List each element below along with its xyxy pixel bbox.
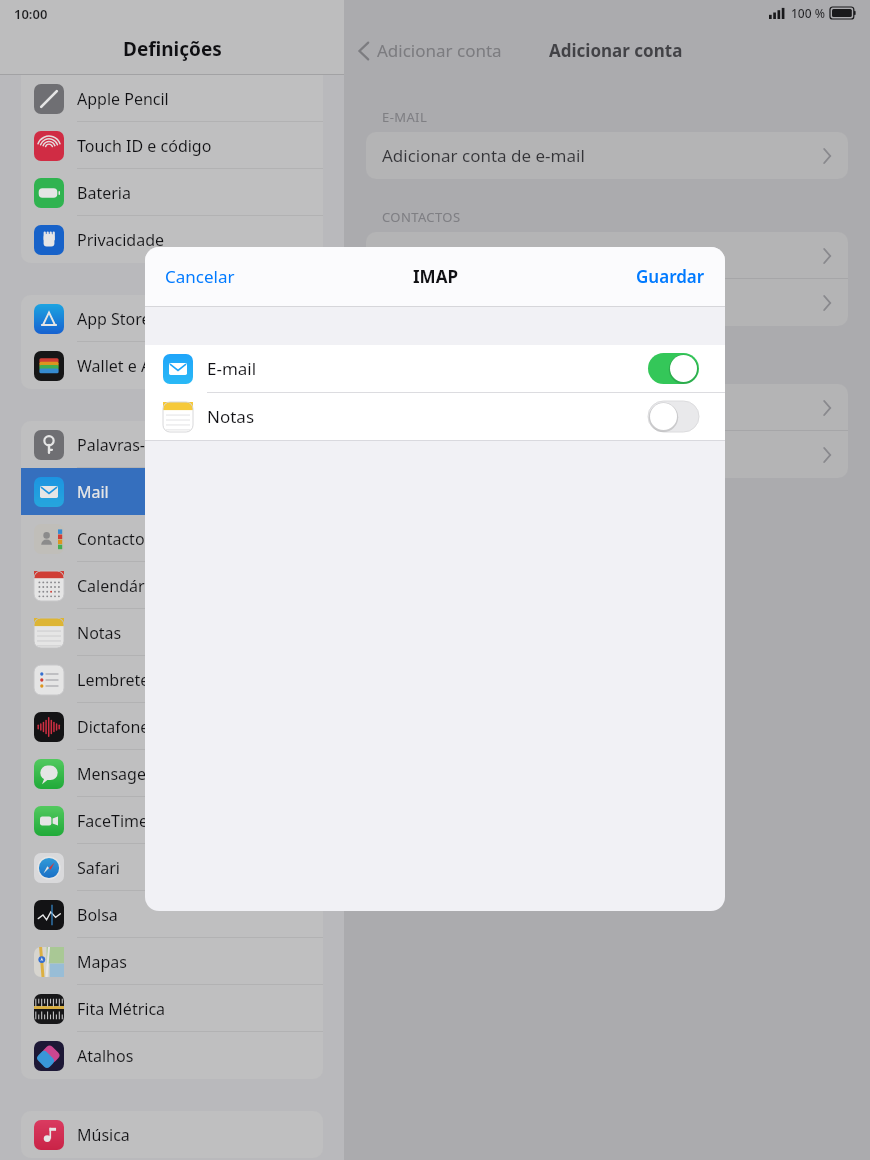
- button[interactable]: Safari: [21, 844, 323, 891]
- staticText: Fita Métrica: [77, 998, 166, 1020]
- staticText: E-mail: [207, 357, 257, 380]
- button[interactable]: FaceTime: [21, 797, 323, 844]
- staticText: E-MAIL: [382, 108, 428, 126]
- button[interactable]: Bolsa: [21, 891, 323, 938]
- staticText: Cancelar: [165, 265, 235, 288]
- staticText: Atalhos: [77, 1045, 134, 1067]
- staticText: 10:00: [14, 5, 48, 23]
- staticText: 100 %: [791, 5, 825, 21]
- staticText: Guardar: [636, 265, 705, 288]
- button[interactable]: Mapas: [21, 938, 323, 985]
- button[interactable]: Notas: [21, 609, 323, 656]
- button[interactable]: Fita Métrica: [21, 985, 323, 1032]
- staticText: Dictafone: [77, 716, 150, 738]
- staticText: Palavras-passe: [77, 434, 189, 456]
- button[interactable]: Wallet e Apple Pay: [21, 342, 323, 389]
- button[interactable]: Touch ID e código: [21, 122, 323, 169]
- staticText: CONTACTOS: [382, 208, 461, 226]
- button[interactable]: Bateria: [21, 169, 323, 216]
- staticText: App Store: [77, 308, 151, 330]
- button[interactable]: Back: [358, 39, 502, 62]
- button[interactable]: Palavras-passe: [21, 421, 323, 468]
- button[interactable]: Contactos: [21, 515, 323, 562]
- button[interactable]: [366, 431, 848, 478]
- staticText: Bolsa: [77, 904, 118, 926]
- staticText: Touch ID e código: [77, 135, 212, 157]
- staticText: Adicionar conta: [549, 39, 683, 62]
- staticText: Privacidade: [77, 229, 165, 251]
- staticText: Calendário: [77, 575, 159, 597]
- staticText: Mapas: [77, 951, 127, 973]
- button[interactable]: Guardar: [616, 255, 725, 298]
- staticText: Adicionar conta: [377, 39, 502, 62]
- button[interactable]: Dictafone: [21, 703, 323, 750]
- button[interactable]: [366, 279, 848, 326]
- button[interactable]: Apple Pencil: [21, 75, 323, 122]
- button[interactable]: Privacidade: [21, 216, 323, 263]
- staticText: Mail: [77, 481, 109, 503]
- staticText: Definições: [123, 36, 222, 62]
- staticText: Adicionar conta de e-mail: [382, 144, 585, 167]
- staticText: Música: [77, 1124, 130, 1146]
- button[interactable]: Mail: [21, 468, 323, 515]
- staticText: Lembretes: [77, 669, 157, 691]
- staticText: Wallet e Apple Pay: [77, 355, 215, 377]
- staticText: Contactos: [77, 528, 153, 550]
- staticText: FaceTime: [77, 810, 148, 832]
- button[interactable]: Calendário: [21, 562, 323, 609]
- button[interactable]: Cancelar: [145, 255, 255, 298]
- button[interactable]: Adicionar conta de e-mail: [366, 132, 848, 179]
- staticText: Bateria: [77, 182, 131, 204]
- button[interactable]: Música: [21, 1111, 323, 1158]
- button[interactable]: Notas: [145, 393, 725, 440]
- button[interactable]: Mensagens: [21, 750, 323, 797]
- staticText: Mensagens: [77, 763, 164, 785]
- button[interactable]: Lembretes: [21, 656, 323, 703]
- button[interactable]: E-mail: [145, 345, 725, 392]
- staticText: IMAP: [413, 265, 458, 288]
- button[interactable]: [366, 232, 848, 279]
- button[interactable]: App Store: [21, 295, 323, 342]
- button[interactable]: Atalhos: [21, 1032, 323, 1079]
- staticText: Notas: [77, 622, 122, 644]
- staticText: Apple Pencil: [77, 88, 169, 110]
- button[interactable]: [366, 384, 848, 431]
- staticText: Notas: [207, 405, 255, 428]
- staticText: Safari: [77, 857, 120, 879]
